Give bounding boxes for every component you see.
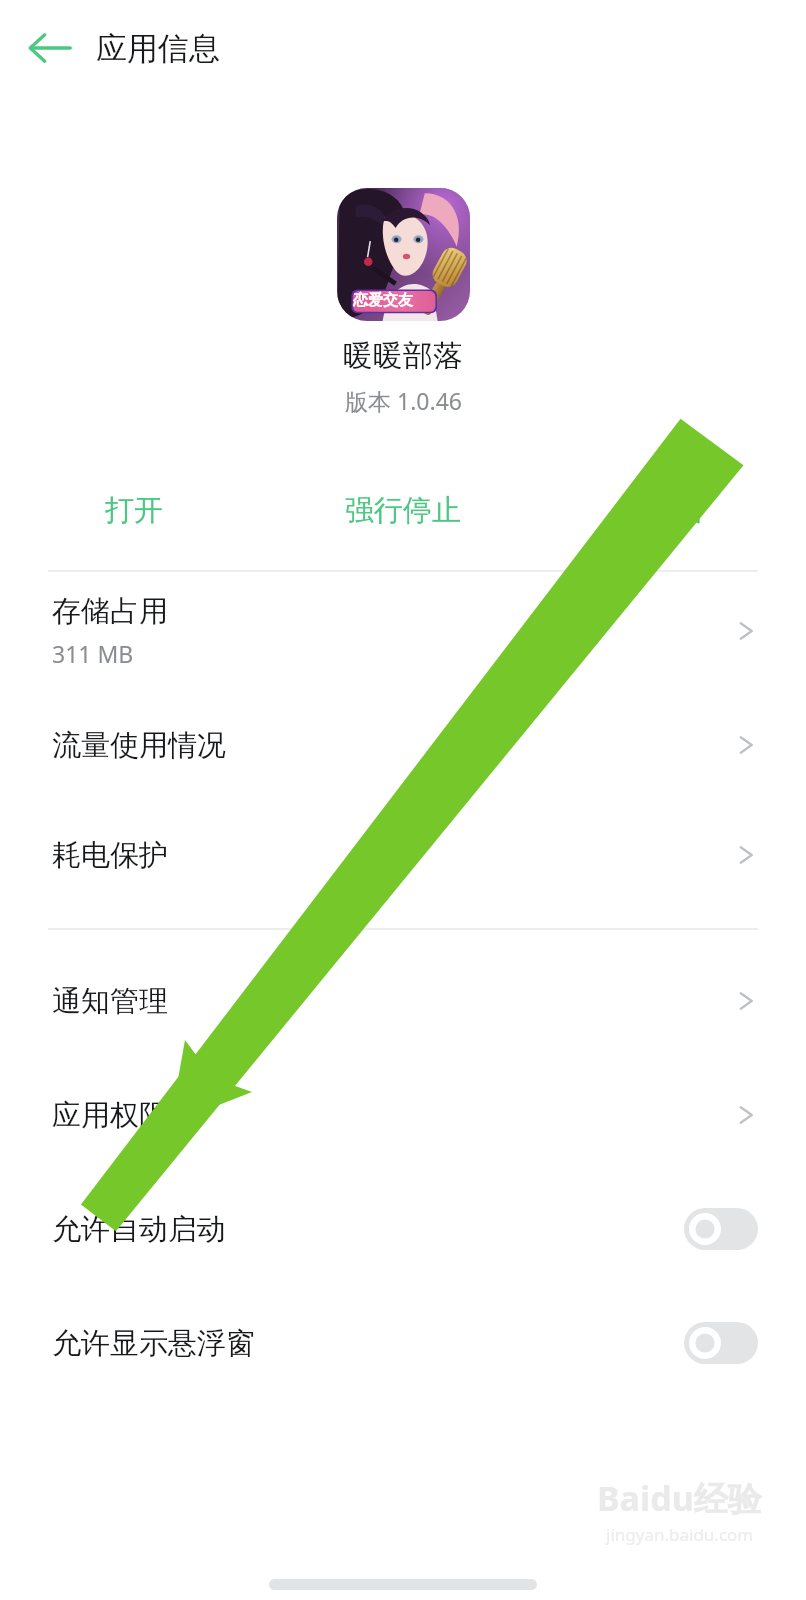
button[interactable]: Toggle 允许自动启动: [684, 1208, 758, 1250]
button[interactable]: 流量使用情况: [0, 690, 806, 800]
staticText: 打开: [105, 492, 163, 529]
staticText: 应用权限: [52, 1097, 168, 1134]
button[interactable]: Toggle 允许显示悬浮窗: [684, 1322, 758, 1364]
staticText: 允许显示悬浮窗: [52, 1325, 684, 1362]
staticText: 卸载: [643, 492, 701, 529]
staticText: Baidu经验: [597, 1475, 762, 1521]
staticText: 流量使用情况: [52, 727, 226, 764]
button[interactable]: App icon: [337, 188, 470, 321]
staticText: 恋爱交友: [353, 291, 413, 310]
staticText: 通知管理: [52, 983, 168, 1020]
staticText: 允许自动启动: [52, 1211, 684, 1248]
button[interactable]: 打开: [0, 472, 268, 548]
button[interactable]: 应用权限: [0, 1058, 806, 1172]
staticText: 强行停止: [345, 492, 461, 529]
button[interactable]: 强行停止: [268, 472, 537, 548]
staticText: jingyan.baidu.com: [606, 1523, 754, 1546]
button[interactable]: 通知管理: [0, 944, 806, 1058]
button[interactable]: Back: [14, 12, 86, 84]
staticText: 版本 1.0.46: [345, 385, 462, 416]
button[interactable]: 存储占用: [0, 572, 806, 690]
button[interactable]: 卸载: [537, 472, 806, 548]
button[interactable]: 允许显示悬浮窗: [0, 1286, 806, 1400]
button[interactable]: 耗电保护: [0, 800, 806, 910]
staticText: 应用信息: [96, 29, 220, 68]
button[interactable]: 允许自动启动: [0, 1172, 806, 1286]
staticText: 耗电保护: [52, 837, 168, 874]
staticText: 311 MB: [52, 638, 134, 669]
staticText: 暖暖部落: [343, 337, 463, 375]
staticText: 存储占用: [52, 593, 168, 630]
